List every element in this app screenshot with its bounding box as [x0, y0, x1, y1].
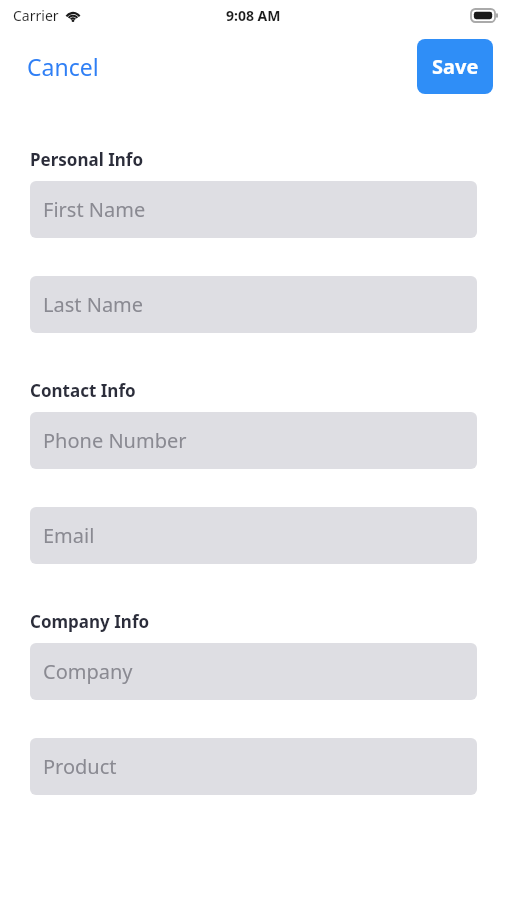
staticText: Cancel: [27, 51, 99, 82]
button[interactable]: Product: [30, 738, 477, 795]
staticText: Carrier: [13, 6, 59, 25]
staticText: Contact Info: [30, 379, 136, 402]
staticText: Personal Info: [30, 148, 144, 171]
staticText: Company: [43, 658, 133, 685]
button[interactable]: Save: [417, 39, 493, 94]
staticText: Last Name: [43, 291, 144, 318]
staticText: Phone Number: [43, 427, 187, 454]
staticText: Company Info: [30, 610, 150, 633]
staticText: Save: [432, 53, 479, 80]
staticText: 9:08 AM: [226, 6, 281, 25]
button[interactable]: Cancel: [19, 45, 107, 88]
staticText: Email: [43, 522, 95, 549]
button[interactable]: First Name: [30, 181, 477, 238]
button[interactable]: Company: [30, 643, 477, 700]
button[interactable]: Email: [30, 507, 477, 564]
staticText: First Name: [43, 196, 146, 223]
staticText: Product: [43, 753, 117, 780]
button[interactable]: Last Name: [30, 276, 477, 333]
button[interactable]: Phone Number: [30, 412, 477, 469]
